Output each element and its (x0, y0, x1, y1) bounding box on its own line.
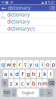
staticText: g (26, 70, 29, 77)
button[interactable]: a (3, 70, 8, 78)
staticText: dictionary (8, 5, 30, 11)
staticText: y (29, 60, 32, 68)
button[interactable]: c (20, 79, 25, 87)
staticText: b (32, 79, 35, 87)
staticText: ▲ (41, 0, 44, 4)
staticText: h (32, 70, 35, 77)
staticText: k (43, 70, 46, 77)
staticText: ← (1, 5, 6, 11)
staticText: ✉ (1, 0, 4, 4)
button[interactable]: v (26, 79, 30, 87)
button[interactable]: Clear (50, 4, 55, 11)
button[interactable]: English (17, 89, 39, 97)
button[interactable]: ⌫ (48, 79, 55, 87)
staticText: ⌕ (48, 90, 51, 95)
staticText: w (6, 60, 10, 68)
button[interactable]: ⇧ (1, 79, 8, 87)
button[interactable]: m (42, 79, 47, 87)
button[interactable]: q (0, 60, 5, 68)
staticText: m (42, 79, 47, 87)
button[interactable]: h (31, 70, 36, 78)
staticText: ▣ (5, 0, 9, 4)
staticText: t (24, 60, 26, 68)
staticText: ⌫ (49, 5, 55, 10)
staticText: The (1, 10, 5, 20)
button[interactable]: ⌕ (45, 89, 53, 97)
button[interactable] (0, 25, 56, 32)
button[interactable]: t (23, 60, 28, 68)
staticText: English (22, 90, 34, 95)
button[interactable]: The (0, 11, 56, 18)
button[interactable]: x (14, 79, 19, 87)
button[interactable]: u (34, 60, 39, 68)
staticText: r (19, 60, 21, 68)
staticText: l (50, 70, 51, 77)
button[interactable]: r (17, 60, 22, 68)
staticText: , (13, 89, 15, 96)
staticText: dictionary (?) (7, 26, 34, 32)
staticText: x (15, 79, 18, 87)
button[interactable]: w (6, 60, 11, 68)
staticText: . (41, 89, 43, 96)
staticText: q (1, 60, 4, 68)
button[interactable]: n (37, 79, 42, 87)
button[interactable]: l (48, 70, 53, 78)
staticText: a (4, 70, 7, 77)
button[interactable]: Back (1, 4, 6, 11)
staticText: s (10, 70, 13, 77)
staticText: ▮ (45, 0, 47, 4)
button[interactable]: ?123 (3, 89, 11, 97)
button[interactable]: d (14, 70, 19, 78)
staticText: u (35, 60, 38, 68)
staticText: e (12, 60, 15, 68)
button[interactable]: p (51, 60, 56, 68)
staticText: ⇧ (3, 81, 7, 86)
button[interactable] (0, 18, 56, 25)
button[interactable]: e (12, 60, 16, 68)
staticText: 9:41 (48, 0, 55, 5)
button[interactable]: , (11, 89, 16, 97)
button[interactable]: k (42, 70, 47, 78)
staticText: ⌫ (48, 81, 54, 86)
staticText: dictionary (7, 19, 29, 25)
button[interactable]: i (40, 60, 44, 68)
button[interactable]: . (39, 89, 44, 97)
button[interactable]: o (45, 60, 50, 68)
staticText: ◔ (10, 0, 13, 4)
staticText: f (21, 70, 23, 77)
button[interactable]: s (9, 70, 14, 78)
staticText: n (38, 79, 41, 87)
staticText: c (21, 79, 24, 87)
staticText: v (26, 79, 29, 87)
staticText: o (46, 60, 49, 68)
button[interactable]: j (37, 70, 42, 78)
button[interactable]: z (9, 79, 14, 87)
staticText: dictionary (7, 12, 29, 18)
button[interactable]: g (26, 70, 30, 78)
staticText: j (39, 70, 40, 77)
button[interactable]: b (31, 79, 36, 87)
staticText: ?123 (3, 90, 10, 95)
staticText: p (52, 60, 55, 68)
staticText: d (15, 70, 18, 77)
button[interactable]: y (28, 60, 33, 68)
button[interactable]: f (20, 70, 25, 78)
staticText: z (10, 79, 13, 87)
